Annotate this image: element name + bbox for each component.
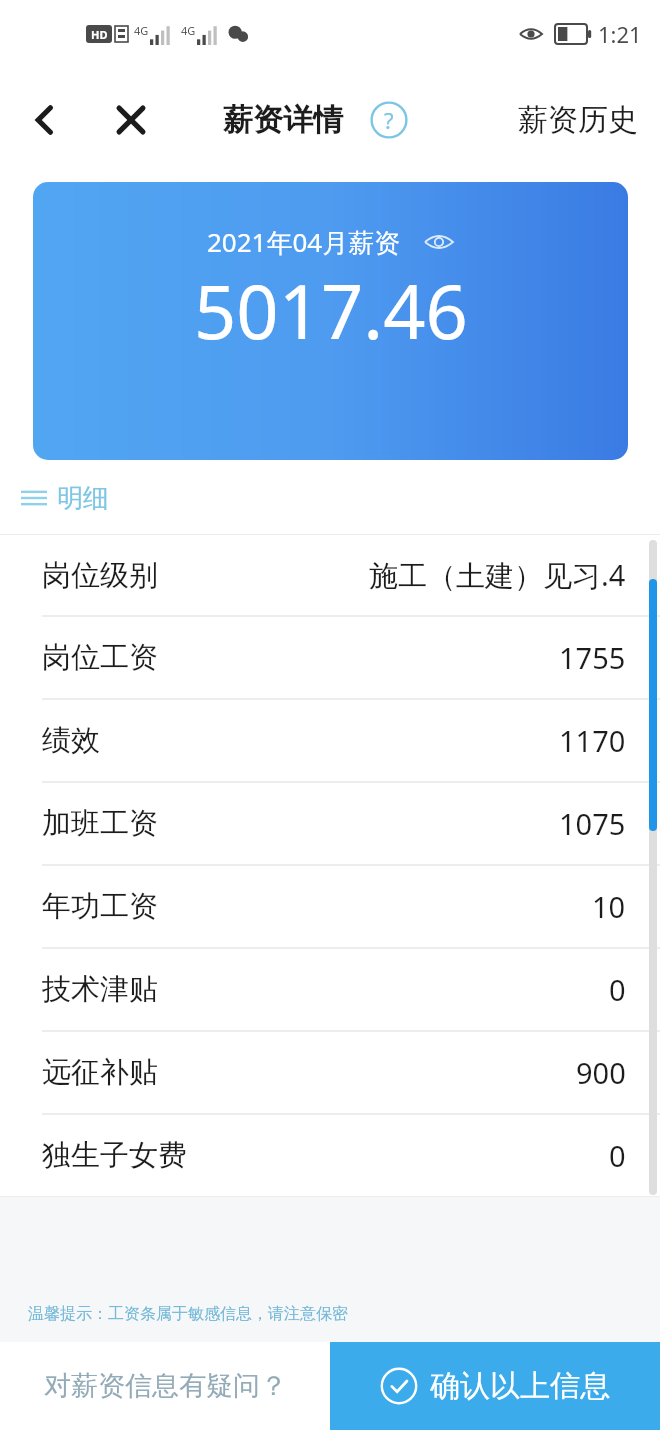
staticText: 1170 — [559, 721, 626, 760]
staticText: 900 — [576, 1053, 626, 1092]
button[interactable]: 技术津贴 — [0, 947, 660, 1030]
staticText: 明细 — [57, 482, 109, 515]
button[interactable]: 远征补贴 — [0, 1030, 660, 1113]
staticText: ? — [384, 105, 394, 135]
staticText: 0 — [609, 1136, 626, 1175]
button[interactable]: 岗位工资 — [0, 615, 660, 698]
staticText: 远征补贴 — [42, 1054, 158, 1091]
staticText: 4G — [134, 23, 149, 38]
button[interactable]: 绩效 — [0, 698, 660, 781]
staticText: HD — [91, 27, 108, 42]
staticText: 确认以上信息 — [430, 1367, 610, 1405]
button[interactable]: 确认以上信息 — [330, 1342, 660, 1430]
staticText: 4G — [181, 23, 196, 38]
staticText: 施工（土建）见习.4 — [369, 555, 626, 595]
staticText: 薪资详情 — [223, 101, 343, 139]
staticText: 2021年04月薪资 — [207, 224, 401, 260]
staticText: 薪资历史 — [518, 101, 638, 139]
staticText: 0 — [609, 970, 626, 1009]
staticText: 加班工资 — [42, 805, 158, 842]
button[interactable]: 对薪资信息有疑问？ — [0, 1342, 330, 1430]
staticText: 岗位工资 — [42, 639, 158, 676]
button[interactable]: 年功工资 — [0, 864, 660, 947]
button[interactable]: 2021年04月薪资 — [33, 182, 628, 460]
other: Toggle visibility — [423, 231, 455, 253]
staticText: 1:21 — [598, 19, 642, 49]
staticText: 5017.46 — [194, 260, 468, 361]
staticText: 技术津贴 — [42, 971, 158, 1008]
staticText: 1755 — [559, 638, 626, 677]
button[interactable]: 独生子女费 — [0, 1113, 660, 1196]
staticText: 对薪资信息有疑问？ — [44, 1369, 287, 1403]
button[interactable]: Help — [365, 96, 413, 144]
staticText: 1075 — [559, 804, 626, 843]
staticText: 10 — [592, 887, 626, 926]
button[interactable]: Back — [14, 89, 76, 151]
button[interactable]: Close — [100, 89, 162, 151]
button[interactable]: 岗位级别 — [0, 535, 660, 615]
staticText: 温馨提示：工资条属于敏感信息，请注意保密 — [28, 1304, 348, 1324]
button[interactable]: 加班工资 — [0, 781, 660, 864]
staticText: 年功工资 — [42, 888, 158, 925]
staticText: 岗位级别 — [42, 557, 158, 594]
staticText: 绩效 — [42, 722, 100, 759]
button[interactable]: 薪资历史 — [510, 89, 646, 151]
staticText: 独生子女费 — [42, 1137, 187, 1174]
